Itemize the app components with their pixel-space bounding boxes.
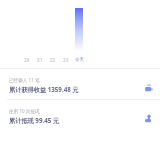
other: Total earnings: [145, 84, 153, 92]
staticText: 20: [24, 57, 30, 63]
other: Total deduction: [145, 115, 153, 123]
staticText: 22: [50, 57, 56, 63]
staticText: 累计获得收益 1359.48 元: [9, 85, 79, 93]
button[interactable]: 使用 10 次抵现: [0, 99, 160, 130]
staticText: 21: [37, 57, 43, 63]
staticText: 已经赚入 11 笔: [9, 77, 40, 83]
button[interactable]: 已经赚入 11 笔: [0, 68, 160, 99]
staticText: 累计抵现 99.45 元: [9, 116, 60, 124]
staticText: 今天: [75, 57, 85, 63]
staticText: 使用 10 次抵现: [9, 108, 40, 114]
staticText: 23: [63, 57, 69, 63]
